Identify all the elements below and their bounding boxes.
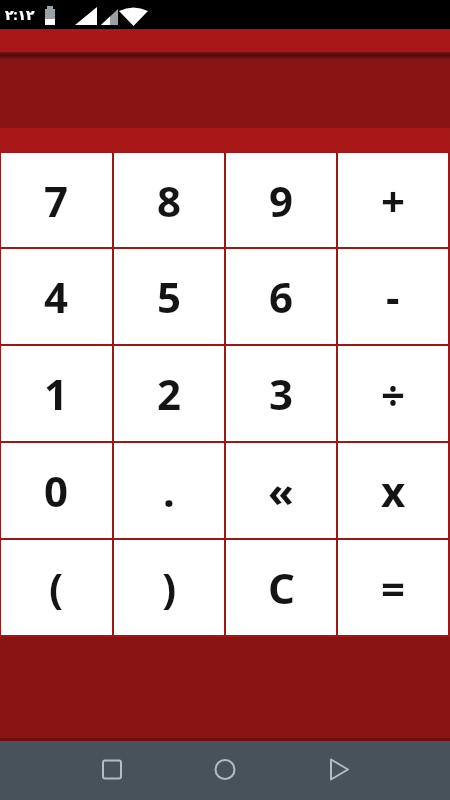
staticText: 0: [44, 462, 69, 519]
button[interactable]: +: [338, 153, 448, 247]
staticText: ): [162, 559, 177, 616]
staticText: 4: [44, 268, 69, 325]
button[interactable]: 1: [1, 346, 112, 441]
button[interactable]: [0, 741, 150, 800]
button[interactable]: 0: [1, 443, 112, 538]
staticText: =: [381, 559, 406, 616]
staticText: 1: [44, 365, 69, 422]
button[interactable]: 6: [226, 249, 336, 344]
button[interactable]: [0, 52, 450, 128]
staticText: 6: [269, 268, 294, 325]
button[interactable]: [300, 741, 450, 800]
button[interactable]: ÷: [338, 346, 448, 441]
button[interactable]: [150, 741, 300, 800]
button[interactable]: C: [226, 540, 336, 635]
button[interactable]: 9: [226, 153, 336, 247]
staticText: x: [381, 462, 406, 519]
button[interactable]: ): [114, 540, 224, 635]
staticText: 2: [157, 365, 182, 422]
staticText: 9: [269, 172, 294, 229]
button[interactable]: x: [338, 443, 448, 538]
button[interactable]: «: [226, 443, 336, 538]
staticText: +: [381, 172, 406, 229]
staticText: -: [386, 268, 400, 325]
button[interactable]: 8: [114, 153, 224, 247]
button[interactable]: 5: [114, 249, 224, 344]
staticText: ٢:١٢: [5, 5, 35, 24]
staticText: 3: [269, 365, 294, 422]
button[interactable]: -: [338, 249, 448, 344]
button[interactable]: 3: [226, 346, 336, 441]
button[interactable]: =: [338, 540, 448, 635]
staticText: C: [268, 559, 295, 616]
staticText: 7: [44, 172, 69, 229]
button[interactable]: .: [114, 443, 224, 538]
staticText: .: [163, 462, 175, 519]
staticText: (: [49, 559, 64, 616]
button[interactable]: 7: [1, 153, 112, 247]
staticText: 8: [157, 172, 182, 229]
staticText: 5: [157, 268, 182, 325]
staticText: «: [268, 462, 294, 519]
button[interactable]: 2: [114, 346, 224, 441]
button[interactable]: 4: [1, 249, 112, 344]
button[interactable]: (: [1, 540, 112, 635]
staticText: ÷: [381, 365, 406, 422]
